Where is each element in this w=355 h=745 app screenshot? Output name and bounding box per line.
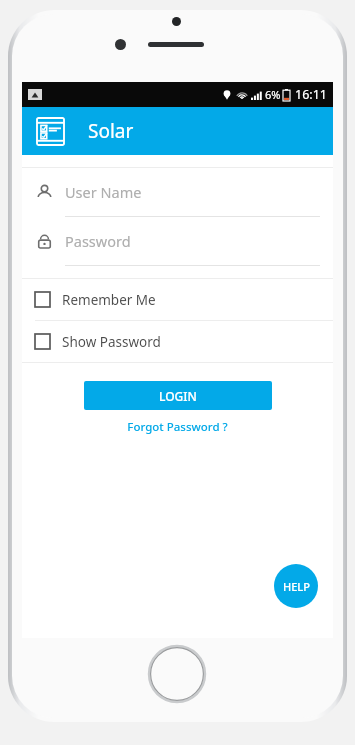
- button[interactable]: Forgot Password ?: [22, 417, 333, 437]
- button[interactable]: User Name: [22, 168, 333, 217]
- staticText: Solar: [88, 118, 134, 144]
- button[interactable]: Show Password: [22, 321, 333, 362]
- staticText: HELP: [283, 579, 310, 594]
- button[interactable]: App logo: [34, 115, 66, 147]
- staticText: LOGIN: [159, 388, 197, 404]
- button[interactable]: LOGIN: [84, 381, 272, 410]
- staticText: User Name: [65, 182, 142, 202]
- staticText: 16:11: [295, 86, 327, 103]
- button[interactable]: Remember Me: [22, 279, 333, 320]
- button[interactable]: Password: [22, 217, 333, 266]
- staticText: 6%: [265, 87, 281, 102]
- staticText: Remember Me: [62, 291, 156, 309]
- staticText: Show Password: [62, 333, 161, 351]
- button[interactable]: HELP: [274, 564, 318, 608]
- staticText: Password: [65, 231, 131, 251]
